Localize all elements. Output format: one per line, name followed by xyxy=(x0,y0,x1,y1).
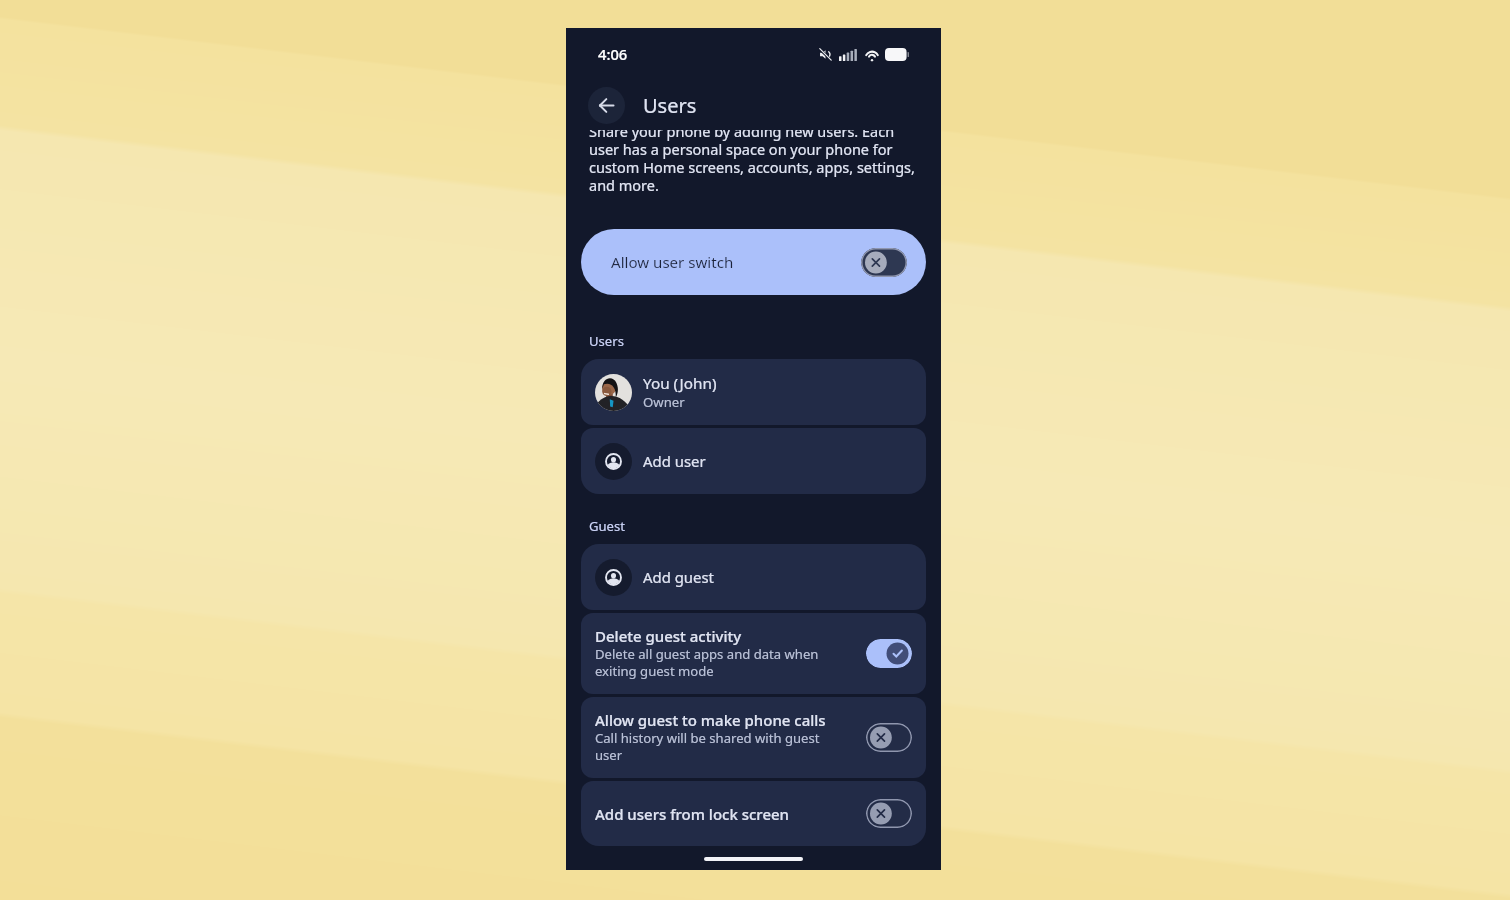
button[interactable]: Delete guest activity xyxy=(581,613,926,694)
staticText: Delete all guest apps and data when exit… xyxy=(595,645,841,680)
button[interactable]: Toggle on xyxy=(866,639,912,668)
button[interactable]: Toggle off xyxy=(866,799,912,828)
staticText: Add user xyxy=(643,451,706,471)
staticText: Allow guest to make phone calls xyxy=(595,710,826,730)
button[interactable]: Add user xyxy=(581,428,926,494)
button[interactable]: Toggle off xyxy=(866,723,912,752)
button[interactable]: Add users from lock screen xyxy=(581,781,926,846)
button[interactable]: You (John) xyxy=(581,359,926,425)
staticText: Allow user switch xyxy=(611,252,734,273)
staticText: Users xyxy=(643,92,697,119)
staticText: Share your phone by adding new users. Ea… xyxy=(589,130,921,195)
staticText: Add users from lock screen xyxy=(595,804,790,824)
staticText: Call history will be shared with guest u… xyxy=(595,729,841,764)
button[interactable]: Toggle off xyxy=(861,248,907,277)
button[interactable]: Allow guest to make phone calls xyxy=(581,697,926,778)
staticText: Delete guest activity xyxy=(595,626,742,646)
button[interactable]: Add guest xyxy=(581,544,926,610)
button[interactable]: Allow user switch xyxy=(581,229,926,295)
staticText: Users xyxy=(589,332,624,350)
staticText: Guest xyxy=(589,517,626,535)
staticText: Owner xyxy=(643,393,685,411)
staticText: You (John) xyxy=(643,373,717,394)
button[interactable]: Back xyxy=(588,87,625,124)
staticText: 4:06 xyxy=(598,44,628,64)
staticText: Add guest xyxy=(643,567,714,587)
